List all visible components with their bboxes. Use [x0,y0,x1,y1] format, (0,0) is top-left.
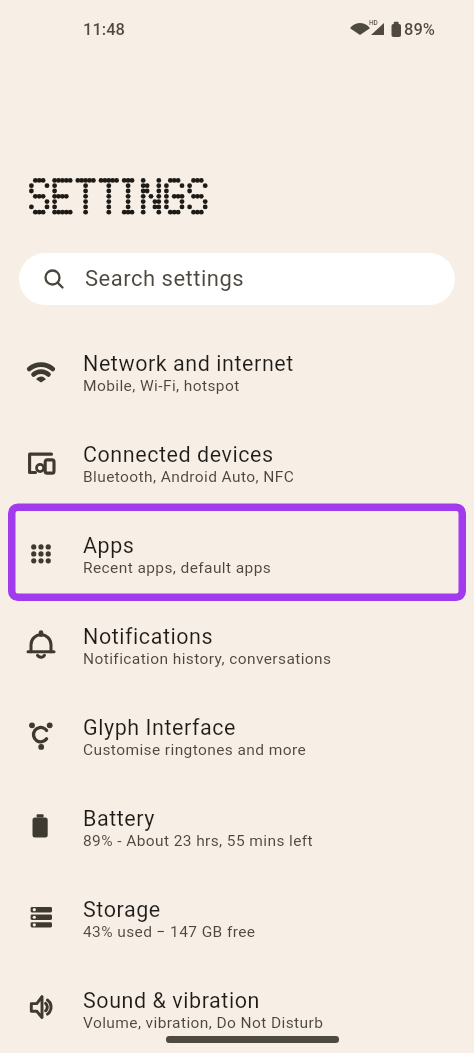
staticText: 89% - About 23 hrs, 55 mins left [83,832,314,850]
button[interactable]: Glyph Interface [0,691,474,782]
staticText: Apps [83,533,135,558]
button[interactable]: Apps [0,509,474,600]
button[interactable]: Storage [0,873,474,964]
button[interactable]: Connected devices [0,418,474,509]
button[interactable]: Sound & vibration [0,964,474,1053]
staticText: Customise ringtones and more [83,741,307,759]
staticText: Connected devices [83,442,274,467]
staticText: Volume, vibration, Do Not Disturb [83,1014,324,1032]
staticText: Glyph Interface [83,715,236,740]
staticText: Recent apps, default apps [83,559,272,577]
staticText: Notification history, conversations [83,650,332,668]
staticText: 89% [404,20,435,39]
staticText: Network and internet [83,351,294,376]
staticText: Battery [83,806,156,831]
staticText: 43% used − 147 GB free [83,923,256,941]
staticText: Storage [83,897,161,922]
staticText: Mobile, Wi-Fi, hotspot [83,377,240,395]
staticText: Search settings [85,266,245,292]
button[interactable]: Network and internet [0,327,474,418]
staticText: Bluetooth, Android Auto, NFC [83,468,295,486]
staticText: Notifications [83,624,214,649]
button[interactable]: Search settings [19,253,455,305]
staticText: 11:48 [83,20,125,39]
button[interactable]: Battery [0,782,474,873]
staticText: HD [369,19,378,27]
staticText: Sound & vibration [83,988,260,1013]
button[interactable]: Notifications [0,600,474,691]
